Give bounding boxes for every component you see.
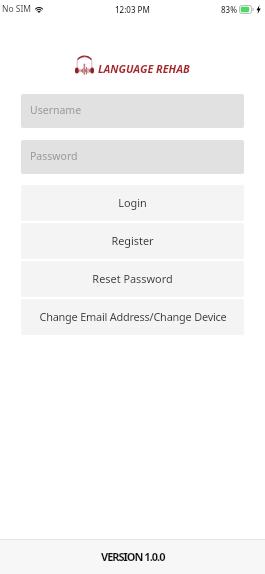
staticText: Username bbox=[30, 103, 82, 117]
button[interactable]: Reset Password bbox=[21, 261, 244, 297]
staticText: 83% bbox=[221, 4, 237, 15]
staticText: Change Email Address/Change Device bbox=[39, 309, 227, 324]
button[interactable]: Login bbox=[21, 185, 244, 221]
staticText: Register bbox=[111, 233, 154, 248]
button[interactable]: Password bbox=[21, 140, 244, 174]
staticText: Password bbox=[30, 149, 78, 163]
staticText: LANGUAGE REHAB bbox=[98, 61, 190, 76]
staticText: Login bbox=[118, 195, 147, 210]
staticText: 12:03 PM bbox=[115, 4, 150, 15]
staticText: VERSION 1.0.0 bbox=[101, 549, 165, 564]
button[interactable]: Username bbox=[21, 94, 244, 128]
button[interactable]: Register bbox=[21, 223, 244, 259]
staticText: No SIM bbox=[2, 3, 32, 15]
button[interactable]: Change Email Address/Change Device bbox=[21, 299, 244, 335]
staticText: Reset Password bbox=[92, 271, 173, 286]
